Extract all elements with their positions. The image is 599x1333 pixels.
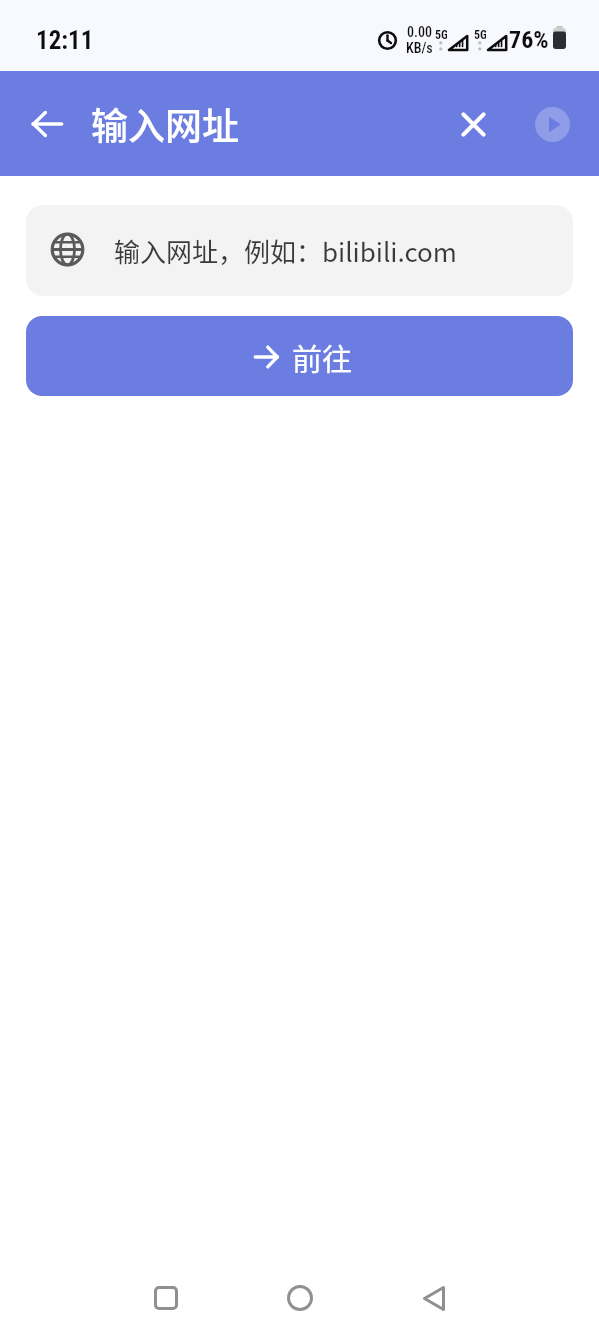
staticText: 输入网址 <box>91 97 239 151</box>
button[interactable]: Back <box>19 96 75 152</box>
staticText: 前往 <box>292 335 352 378</box>
button[interactable]: Recents <box>133 1265 199 1331</box>
staticText: 12:11 <box>36 26 94 55</box>
button[interactable]: Back <box>401 1265 467 1331</box>
button[interactable]: 输入网址，例如：bilibili.com <box>26 205 573 296</box>
staticText: 76% <box>509 26 549 54</box>
staticText: 0.00 <box>407 24 432 40</box>
button[interactable]: Play <box>528 100 576 148</box>
button[interactable]: Home <box>267 1265 333 1331</box>
button[interactable]: Close <box>445 96 501 152</box>
button[interactable]: 前往 <box>26 316 573 396</box>
staticText: 输入网址，例如：bilibili.com <box>114 232 457 270</box>
staticText: 5G <box>474 28 486 42</box>
staticText: KB/s <box>406 40 433 56</box>
staticText: 5G <box>435 28 447 42</box>
